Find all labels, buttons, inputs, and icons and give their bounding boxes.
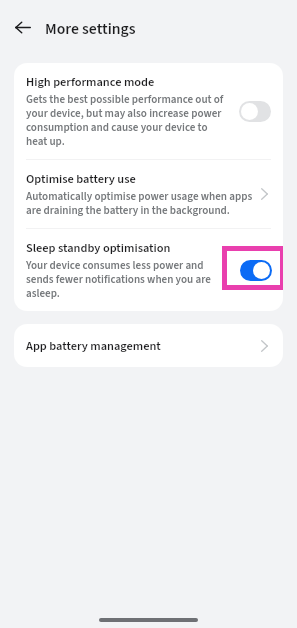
staticText: Sleep standby optimisation	[26, 239, 171, 257]
staticText: Gets the best possible performance out o…	[26, 92, 227, 149]
button[interactable]: Optimise battery use	[249, 179, 279, 209]
staticText: More settings	[45, 18, 136, 40]
button[interactable]: High performance mode	[14, 63, 283, 159]
button[interactable]: App battery management	[14, 324, 283, 367]
staticText: Automatically optimise power usage when …	[26, 189, 260, 218]
button[interactable]: Optimise battery use	[14, 160, 283, 228]
staticText: App battery management	[26, 337, 161, 355]
button[interactable]: High performance mode	[239, 101, 271, 122]
button[interactable]: App battery management	[249, 331, 279, 361]
button[interactable]: Sleep standby optimisation	[240, 260, 272, 281]
button[interactable]: Sleep standby optimisation	[14, 229, 283, 311]
staticText: High performance mode	[26, 73, 155, 91]
staticText: Optimise battery use	[26, 170, 136, 188]
staticText: Your device consumes less power and send…	[26, 258, 227, 301]
button[interactable]: Navigate up	[7, 11, 39, 43]
